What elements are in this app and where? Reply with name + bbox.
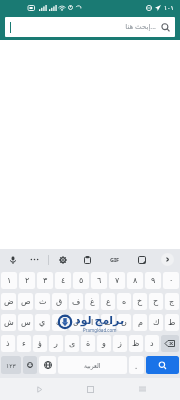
button[interactable]: ش [1, 314, 16, 331]
staticText: ض [4, 297, 14, 306]
button[interactable]: ١٢٣ [1, 356, 21, 374]
staticText: ٤ [61, 276, 66, 285]
staticText: ١ [7, 276, 12, 285]
staticText: م [138, 318, 143, 327]
button[interactable]: Change language [39, 356, 56, 374]
button[interactable]: ط [165, 314, 179, 331]
staticText: ظ [132, 339, 140, 348]
staticText: ز [118, 339, 122, 348]
staticText: ن [121, 318, 127, 327]
button[interactable]: ق [52, 293, 67, 310]
staticText: العربية [84, 362, 101, 369]
staticText: ه [122, 297, 127, 306]
staticText: ى [69, 339, 76, 348]
staticText: ٦ [97, 276, 102, 285]
button[interactable]: ٤ [55, 272, 71, 289]
staticText: ل [73, 318, 79, 327]
button[interactable]: Backspace [161, 335, 179, 352]
button[interactable]: Clipboard [81, 253, 94, 266]
button[interactable]: د [145, 335, 159, 352]
button[interactable]: ك [149, 314, 163, 331]
button[interactable]: ٥ [73, 272, 89, 289]
staticText: ش [4, 318, 14, 327]
staticText: ص [21, 297, 31, 306]
staticText: ت [104, 318, 112, 327]
button[interactable]: ح [149, 293, 163, 310]
staticText: د [150, 339, 154, 348]
staticText: ذ [6, 339, 10, 348]
staticText: ة [86, 339, 91, 348]
staticText: ع [106, 297, 111, 306]
button[interactable]: خ [133, 293, 147, 310]
staticText: ا [91, 318, 94, 327]
button[interactable]: ظ [129, 335, 143, 352]
button[interactable]: و [97, 335, 111, 352]
staticText: ط [168, 318, 176, 327]
button[interactable]: Recent apps [129, 378, 155, 400]
button[interactable]: ت [101, 314, 115, 331]
button[interactable]: ء [17, 335, 31, 352]
staticText: س [21, 318, 31, 327]
button[interactable]: ٦ [91, 272, 107, 289]
staticText: ١٠١ [164, 4, 174, 11]
button[interactable]: More options [28, 253, 41, 266]
staticText: ٠ [169, 276, 174, 285]
button[interactable]: Search [146, 356, 179, 374]
button[interactable]: ا [85, 314, 99, 331]
button[interactable]: ٠ [163, 272, 179, 289]
button[interactable]: ف [69, 293, 83, 310]
button[interactable]: ٩ [145, 272, 161, 289]
button[interactable]: Stickers [135, 253, 148, 266]
staticText: ك [153, 318, 160, 327]
button[interactable]: ض [1, 293, 16, 310]
button[interactable]: ر [49, 335, 63, 352]
button[interactable]: العربية [58, 356, 127, 374]
button[interactable]: ع [101, 293, 115, 310]
button[interactable]: ث [35, 293, 50, 310]
staticText: ٩ [151, 276, 156, 285]
button[interactable]: غ [85, 293, 99, 310]
button[interactable]: ذ [1, 335, 15, 352]
button[interactable]: Voice input [6, 253, 19, 266]
button[interactable]: ز [113, 335, 127, 352]
button[interactable]: ص [18, 293, 33, 310]
staticText: ٣ [43, 276, 48, 285]
button[interactable]: ٢ [19, 272, 35, 289]
button[interactable]: م [133, 314, 147, 331]
button[interactable]: ؤ [33, 335, 47, 352]
staticText: و [102, 339, 106, 348]
button[interactable]: Back [26, 378, 52, 400]
button[interactable]: . [129, 356, 144, 374]
staticText: برامج لود [75, 312, 125, 327]
button[interactable]: Expand toolbar [161, 253, 174, 266]
staticText: ب [56, 318, 64, 327]
button[interactable]: ٨ [127, 272, 143, 289]
button[interactable]: ج [165, 293, 179, 310]
button[interactable]: ل [69, 314, 83, 331]
other: Search [161, 23, 170, 32]
button[interactable]: س [18, 314, 33, 331]
staticText: . [135, 360, 138, 371]
staticText: ٢ [25, 276, 30, 285]
button[interactable]: إبحث هنا... [5, 17, 175, 37]
staticText: ٨ [133, 276, 138, 285]
staticText: غ [90, 297, 95, 306]
staticText: Pramgload.com [83, 327, 117, 333]
button[interactable]: ١ [1, 272, 17, 289]
button[interactable]: ي [35, 314, 50, 331]
staticText: ج [169, 297, 175, 306]
button[interactable]: ن [117, 314, 131, 331]
button[interactable]: ى [65, 335, 79, 352]
button[interactable]: GIF [107, 252, 122, 267]
button[interactable]: Emoji [23, 356, 37, 374]
button[interactable]: ب [52, 314, 67, 331]
staticText: إبحث هنا... [125, 22, 156, 32]
button[interactable]: ه [117, 293, 131, 310]
button[interactable]: ٧ [109, 272, 125, 289]
button[interactable]: ٣ [37, 272, 53, 289]
staticText: ١٢٣ [6, 362, 16, 369]
staticText: ؤ [38, 339, 42, 348]
button[interactable]: ة [81, 335, 95, 352]
button[interactable]: Home [77, 378, 103, 400]
button[interactable]: Settings [56, 253, 69, 266]
